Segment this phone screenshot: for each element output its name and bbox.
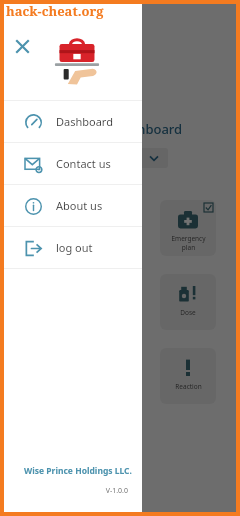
- staticText: Reaction: [175, 382, 202, 391]
- button[interactable]: Close menu: [8, 32, 36, 60]
- staticText: About us: [56, 198, 103, 213]
- staticText: V-1.0.0: [4, 486, 128, 496]
- button[interactable]: Dashboard: [4, 101, 142, 142]
- staticText: practice: [112, 175, 142, 186]
- staticText: Emergency plan: [171, 234, 206, 252]
- button[interactable]: Contact us: [4, 143, 142, 184]
- staticText: Dose: [180, 308, 196, 317]
- button[interactable]: Emergency plan: [160, 200, 216, 256]
- staticText: Dashboard: [114, 120, 183, 138]
- button[interactable]: Reaction: [160, 348, 216, 404]
- staticText: Contact us: [56, 156, 111, 171]
- button[interactable]: About us: [4, 185, 142, 226]
- button[interactable]: log out: [4, 227, 142, 268]
- button[interactable]: Select practice: [102, 148, 168, 168]
- staticText: hack-cheat.org: [6, 2, 104, 20]
- staticText: Wise Prince Holdings LLC.: [24, 465, 132, 477]
- button[interactable]: Dose: [160, 274, 216, 330]
- staticText: Dashboard: [56, 114, 113, 129]
- staticText: log out: [56, 240, 93, 255]
